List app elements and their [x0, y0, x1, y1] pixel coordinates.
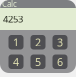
staticText: Calc — [2, 0, 17, 9]
button[interactable]: 4 — [8, 54, 23, 69]
button[interactable]: 3 — [52, 35, 67, 49]
staticText: 5 — [35, 55, 41, 69]
staticText: 4 — [13, 55, 19, 69]
button[interactable]: 1 — [8, 35, 23, 49]
staticText: 4253 — [3, 13, 23, 25]
staticText: 1 — [13, 35, 19, 49]
staticText: 2 — [35, 35, 41, 49]
staticText: 6 — [57, 55, 63, 69]
button[interactable]: 5 — [30, 54, 45, 69]
button[interactable]: 6 — [52, 54, 67, 69]
staticText: 3 — [57, 35, 63, 49]
button[interactable]: 2 — [30, 35, 45, 49]
